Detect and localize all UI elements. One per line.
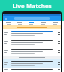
button[interactable]: Search — [3, 16, 61, 21]
button[interactable] — [3, 56, 61, 59]
button[interactable] — [3, 47, 61, 56]
button[interactable] — [37, 21, 49, 25]
staticText: Live Matches — [12, 2, 52, 10]
button[interactable] — [3, 21, 14, 25]
button[interactable] — [3, 38, 61, 47]
button[interactable] — [25, 21, 37, 25]
button[interactable] — [3, 59, 61, 68]
button[interactable] — [3, 68, 61, 72]
button[interactable] — [3, 25, 61, 29]
button[interactable] — [14, 21, 25, 25]
button[interactable] — [49, 21, 61, 25]
button[interactable] — [3, 29, 61, 38]
